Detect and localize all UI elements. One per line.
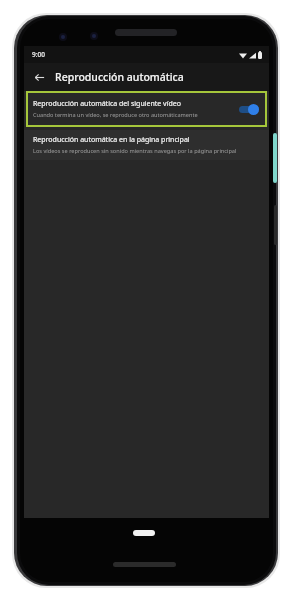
staticText: Los vídeos se reproducen sin sonido mien…: [33, 147, 237, 155]
button[interactable]: Autoplay next video toggle, on: [237, 102, 261, 116]
button[interactable]: Back: [28, 66, 50, 88]
staticText: 9:00: [32, 50, 45, 59]
button[interactable]: Reproducción automática en la página pri…: [24, 130, 269, 160]
staticText: Cuando termina un vídeo, se reproduce ot…: [33, 111, 198, 119]
staticText: Reproducción automática: [55, 70, 184, 84]
button[interactable]: Reproducción automática del siguiente ví…: [26, 91, 267, 127]
staticText: Reproducción automática en la página pri…: [33, 135, 190, 145]
other: Power button: [273, 133, 277, 183]
staticText: Reproducción automática del siguiente ví…: [33, 99, 181, 109]
